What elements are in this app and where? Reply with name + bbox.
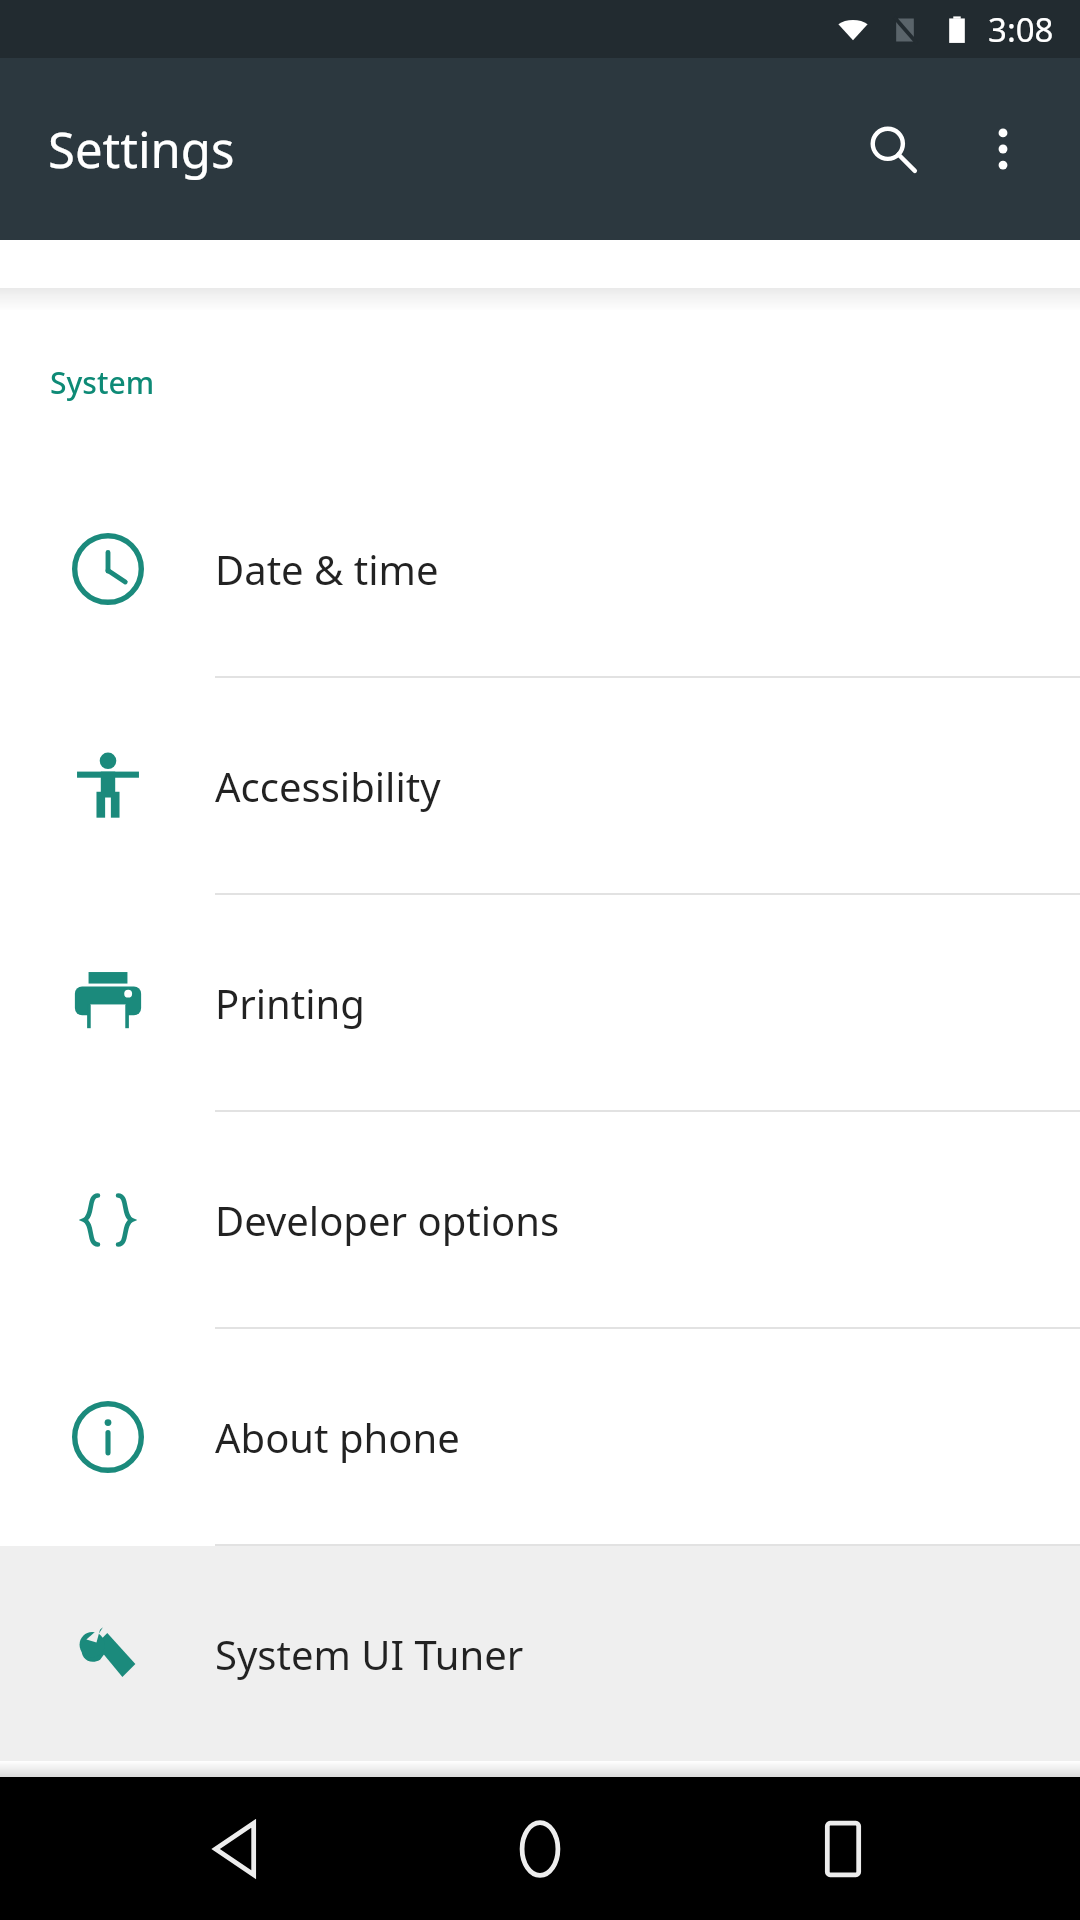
- staticText: Developer options: [215, 1193, 560, 1247]
- button[interactable]: System UI Tuner: [0, 1546, 1080, 1761]
- button[interactable]: Developer options: [0, 1112, 1080, 1327]
- staticText: Settings: [48, 116, 235, 183]
- button[interactable]: About phone: [0, 1329, 1080, 1544]
- button[interactable]: Accessibility: [0, 678, 1080, 893]
- button[interactable]: Back: [173, 1784, 303, 1914]
- button[interactable]: Printing: [0, 895, 1080, 1110]
- staticText: System: [50, 362, 155, 403]
- button[interactable]: Date & time: [0, 461, 1080, 676]
- button[interactable]: More options: [948, 94, 1058, 204]
- staticText: Date & time: [215, 542, 439, 596]
- staticText: 3:08: [988, 7, 1054, 52]
- button[interactable]: Search: [838, 94, 948, 204]
- button[interactable]: Home: [475, 1784, 605, 1914]
- button[interactable]: Recent apps: [778, 1784, 908, 1914]
- staticText: Accessibility: [215, 759, 441, 813]
- staticText: Printing: [215, 976, 365, 1030]
- staticText: System UI Tuner: [215, 1627, 524, 1681]
- staticText: About phone: [215, 1410, 460, 1464]
